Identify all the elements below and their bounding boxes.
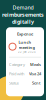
staticText: Sent bbox=[32, 80, 41, 86]
staticText: Category bbox=[9, 62, 25, 67]
staticText: digitally bbox=[12, 18, 34, 25]
staticText: Expense bbox=[17, 31, 33, 36]
staticText: Paid with bbox=[9, 71, 24, 76]
staticText: Visa 24 bbox=[29, 71, 41, 76]
staticText: Lunch meeting bbox=[18, 40, 35, 50]
staticText: 22 Jan 2024 bbox=[18, 50, 36, 54]
staticText: Demand bbox=[12, 4, 33, 11]
staticText: reimbursements bbox=[2, 11, 44, 18]
staticText: Status bbox=[9, 80, 19, 86]
staticText: Meals bbox=[30, 62, 41, 67]
